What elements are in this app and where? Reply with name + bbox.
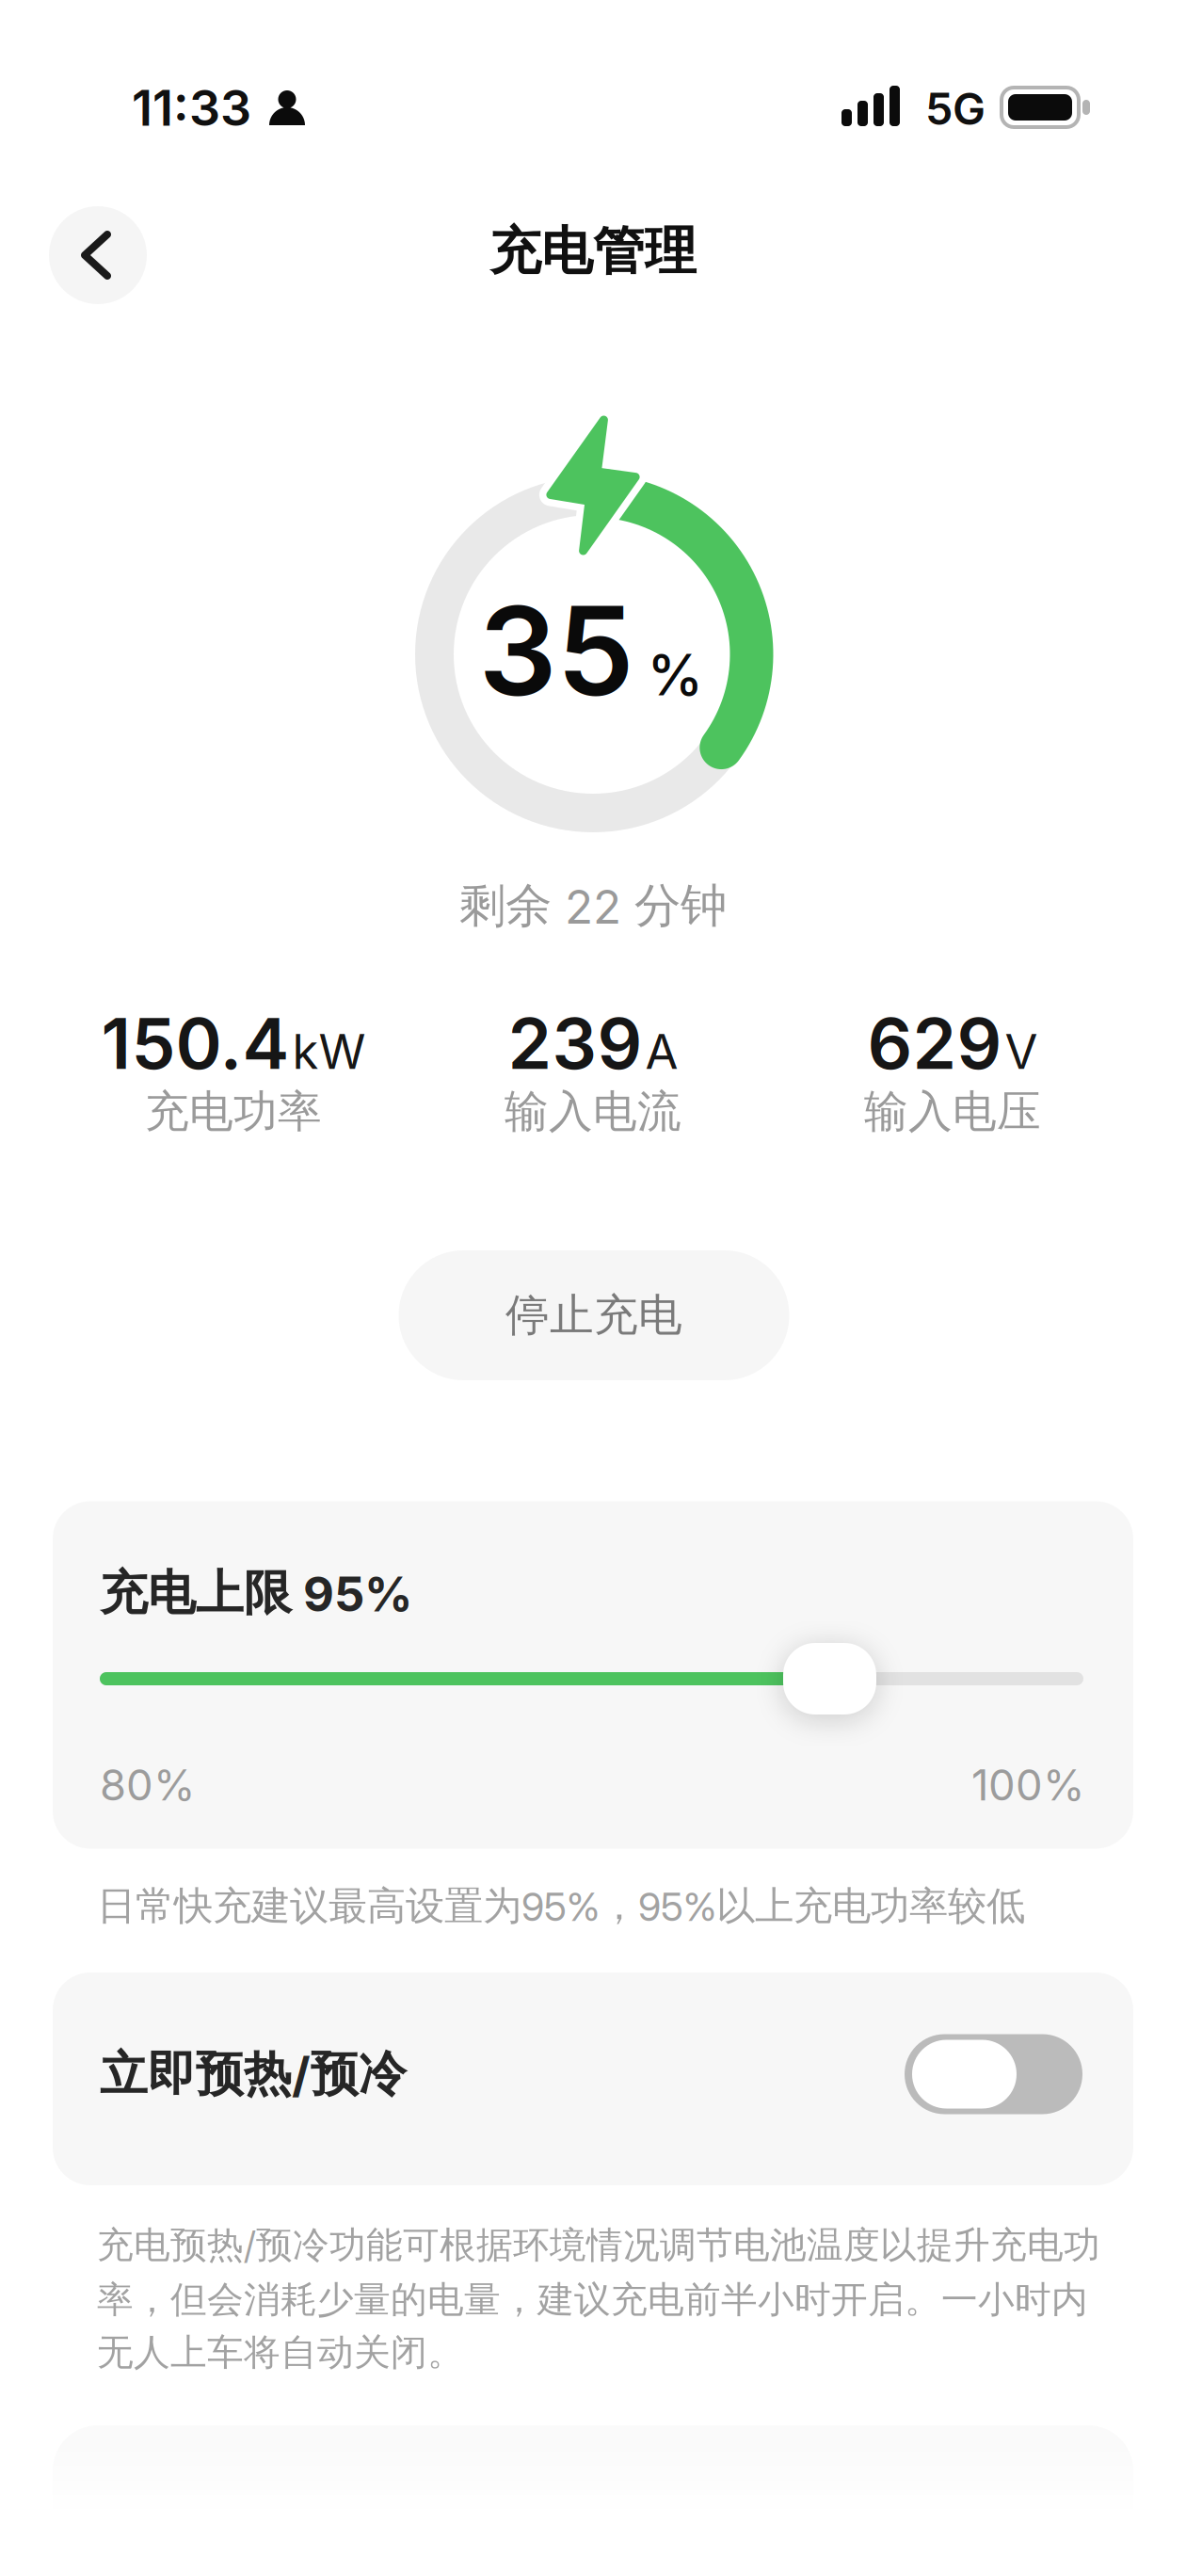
- staticText: 239: [508, 1002, 642, 1085]
- staticText: 35: [479, 578, 634, 723]
- staticText: V: [1005, 1023, 1038, 1080]
- staticText: %: [647, 641, 704, 708]
- staticText: 100%: [971, 1760, 1085, 1810]
- button[interactable]: 返回: [49, 206, 147, 304]
- staticText: A: [645, 1023, 678, 1080]
- staticText: 150.4: [101, 1002, 289, 1085]
- staticText: 输入电流: [505, 1085, 681, 1139]
- staticText: 输入电压: [864, 1085, 1041, 1139]
- staticText: 无人上车将自动关闭。: [97, 2330, 464, 2375]
- staticText: 立即预热/预冷: [100, 2045, 407, 2104]
- button[interactable]: 充电上限滑块: [783, 1643, 876, 1715]
- staticText: 629: [867, 1002, 1002, 1085]
- button[interactable]: 立即预热/预冷开关: [905, 2034, 1082, 2114]
- staticText: 充电功率: [145, 1085, 322, 1139]
- staticText: 充电预热/预冷功能可根据环境情况调节电池温度以提升充电功: [97, 2223, 1100, 2268]
- staticText: 11:33: [132, 79, 251, 137]
- button[interactable]: 停止充电: [399, 1250, 789, 1380]
- staticText: 充电管理: [489, 220, 697, 283]
- staticText: 停止充电: [505, 1288, 682, 1342]
- staticText: 率，但会消耗少量的电量，建议充电前半小时开启。一小时内: [97, 2278, 1088, 2322]
- staticText: kW: [292, 1023, 366, 1080]
- staticText: 5G: [925, 83, 986, 135]
- staticText: 充电上限 95%: [100, 1564, 412, 1622]
- staticText: 剩余 22 分钟: [459, 877, 727, 934]
- staticText: 80%: [100, 1760, 196, 1810]
- staticText: 日常快充建议最高设置为95%，95%以上充电功率较低: [97, 1882, 1025, 1930]
